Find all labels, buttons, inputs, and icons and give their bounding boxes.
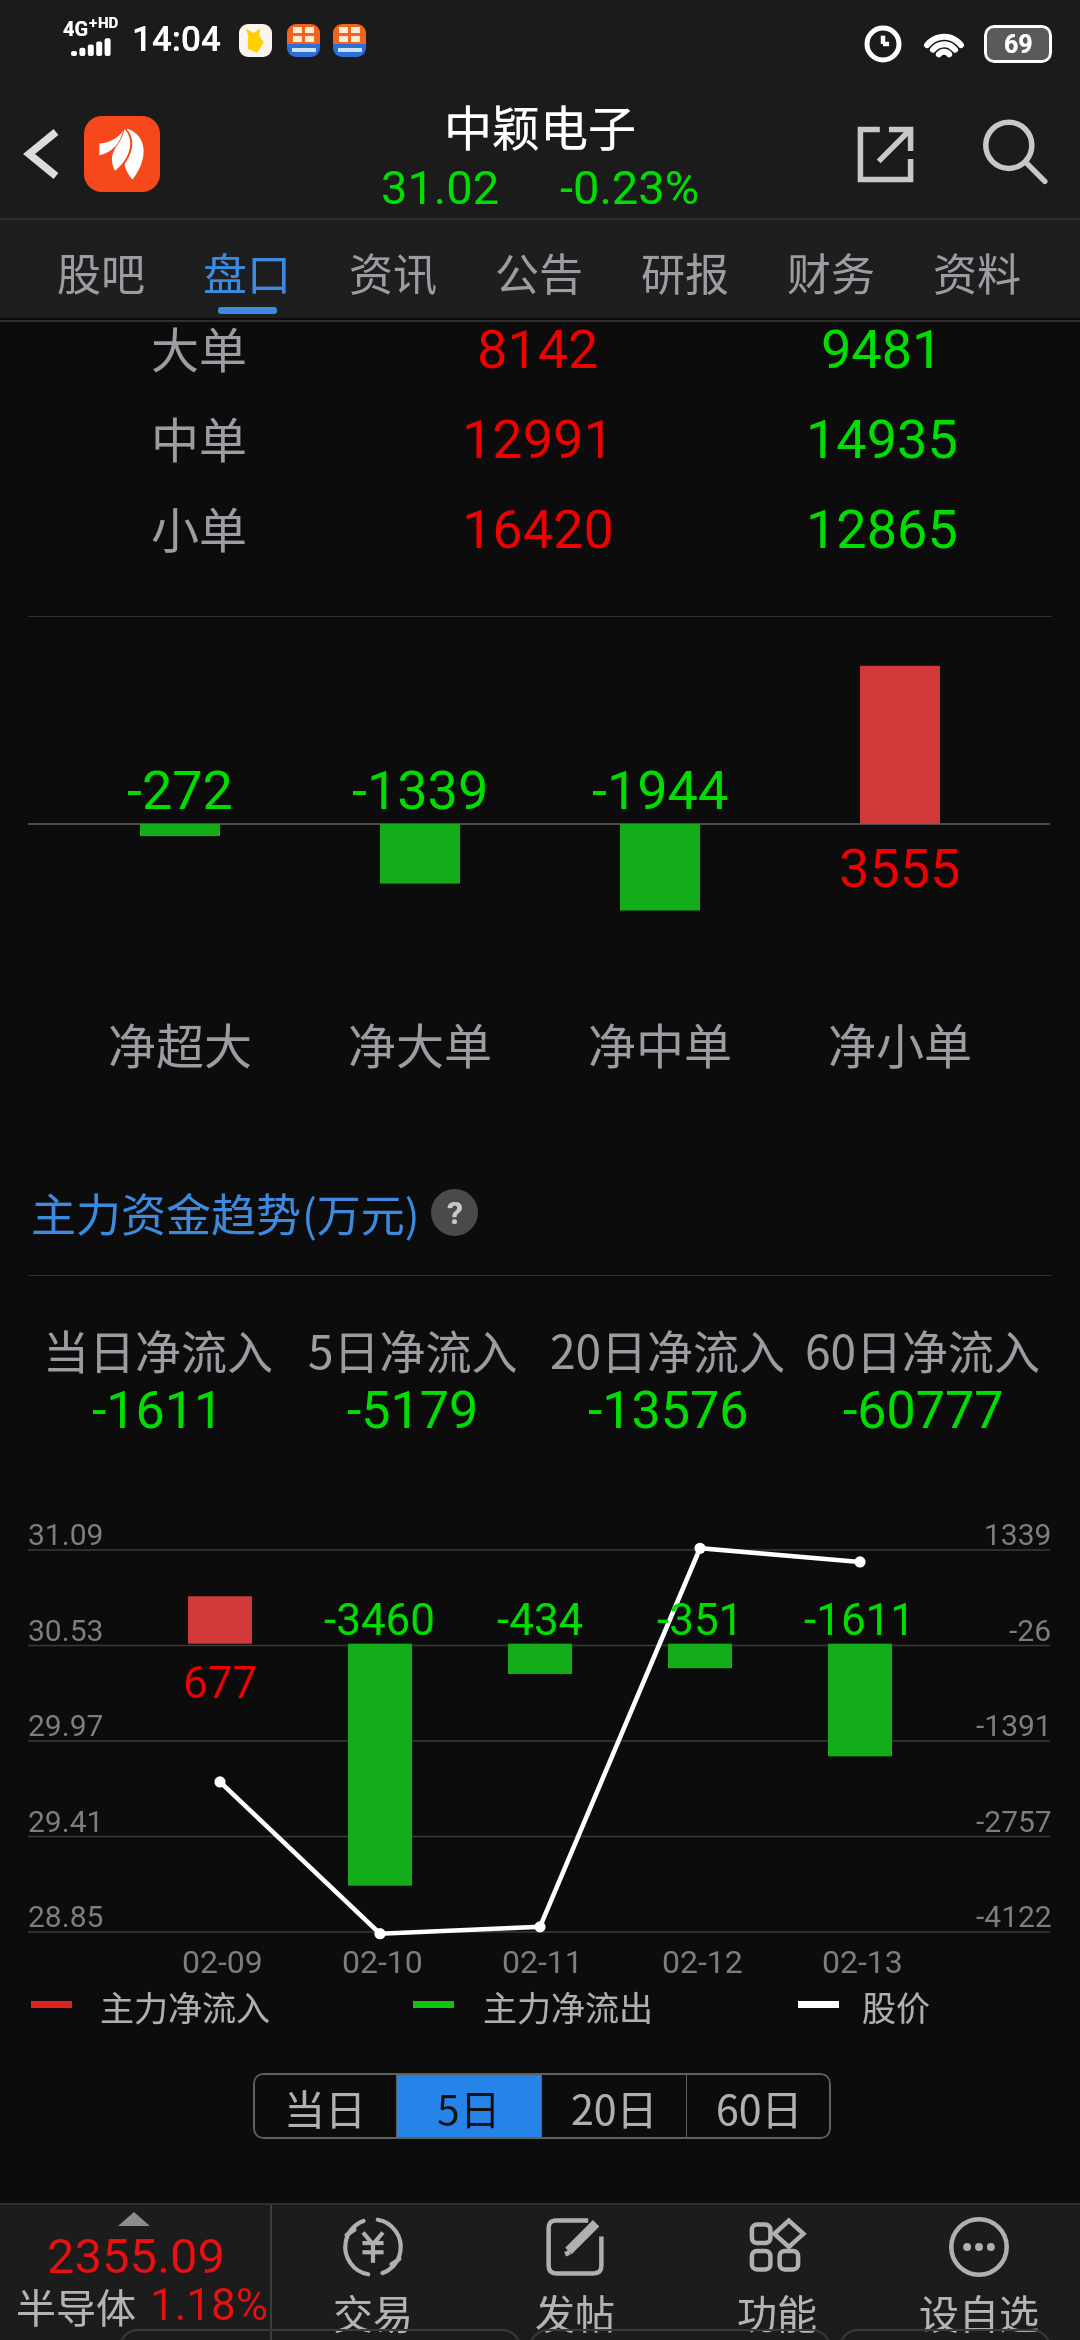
staticText: 当日净流入 xyxy=(43,1316,273,1383)
staticText: 4G xyxy=(63,17,89,40)
button[interactable]: Help xyxy=(431,1189,478,1236)
staticText: 研报 xyxy=(641,240,729,304)
staticText: 小单 xyxy=(151,492,248,562)
staticText: 20日净流入 xyxy=(550,1316,786,1383)
staticText: 12991 xyxy=(462,408,614,471)
staticText: 3555 xyxy=(839,837,961,900)
button[interactable]: 财务 xyxy=(758,220,904,318)
staticText: -1339 xyxy=(352,759,489,822)
staticText: 主力净流出 xyxy=(483,1982,653,2031)
staticText: 5日净流入 xyxy=(308,1316,518,1383)
staticText: 1339 xyxy=(984,1517,1052,1552)
button[interactable]: 资讯 xyxy=(320,220,466,318)
staticText: -3460 xyxy=(324,1594,436,1646)
staticText: -272 xyxy=(127,759,233,822)
staticText: 股价 xyxy=(862,1982,930,2031)
staticText: -434 xyxy=(497,1594,584,1646)
button[interactable]: 功能 xyxy=(676,2205,878,2340)
staticText: -13576 xyxy=(588,1380,749,1441)
button[interactable]: 20日 xyxy=(542,2073,686,2139)
staticText: (万元) xyxy=(302,1181,420,1245)
staticText: HD xyxy=(98,14,119,32)
staticText: -1391 xyxy=(976,1708,1052,1743)
button[interactable]: 当日 xyxy=(253,2073,396,2139)
staticText: 31.02 xyxy=(381,160,500,215)
staticText: -5179 xyxy=(347,1380,479,1441)
staticText: 8142 xyxy=(477,318,599,381)
staticText: 交易 xyxy=(333,2283,413,2340)
staticText: 9481 xyxy=(821,318,943,381)
staticText: -0.23% xyxy=(560,160,700,215)
staticText: 02-09 xyxy=(182,1943,263,1981)
staticText: 2355.09 xyxy=(47,2228,226,2285)
button[interactable]: 5日 xyxy=(397,2073,541,2139)
staticText: 大单 xyxy=(151,312,248,382)
button[interactable]: Back xyxy=(0,88,86,220)
staticText: 20日 xyxy=(571,2077,658,2136)
staticText: 公告 xyxy=(495,240,583,304)
staticText: 29.41 xyxy=(28,1804,104,1839)
staticText: 28.85 xyxy=(28,1899,104,1934)
button[interactable]: App home xyxy=(84,116,160,192)
staticText: 60日 xyxy=(716,2077,803,2136)
staticText: 资讯 xyxy=(349,240,437,304)
staticText: 1.18% xyxy=(150,2279,269,2331)
staticText: 02-13 xyxy=(822,1943,903,1981)
staticText: -4122 xyxy=(976,1899,1052,1934)
staticText: 中颖电子 xyxy=(444,90,637,160)
staticText: 31.09 xyxy=(28,1517,104,1552)
staticText: 净小单 xyxy=(828,1008,973,1078)
button[interactable]: 发帖 xyxy=(474,2205,676,2340)
staticText: 发帖 xyxy=(535,2283,615,2340)
staticText: 677 xyxy=(183,1657,258,1709)
button[interactable]: 交易 xyxy=(272,2205,474,2340)
staticText: -351 xyxy=(657,1594,744,1646)
button[interactable]: 研报 xyxy=(612,220,758,318)
button[interactable]: 2355.09 xyxy=(0,2205,270,2340)
staticText: 当日 xyxy=(284,2077,366,2136)
button[interactable]: 盘口 xyxy=(174,220,320,318)
staticText: 半导体 xyxy=(16,2277,136,2335)
staticText: 净大单 xyxy=(348,1008,493,1078)
staticText: 60日净流入 xyxy=(805,1316,1041,1383)
staticText: 净中单 xyxy=(588,1008,733,1078)
button[interactable]: 资料 xyxy=(904,220,1050,318)
button[interactable]: 设自选 xyxy=(878,2205,1080,2340)
staticText: 14:04 xyxy=(132,19,221,60)
staticText: 30.53 xyxy=(28,1613,104,1648)
staticText: 中单 xyxy=(151,402,248,472)
staticText: 净超大 xyxy=(108,1008,253,1078)
staticText: 16420 xyxy=(462,498,614,561)
staticText: 主力净流入 xyxy=(100,1982,270,2031)
staticText: 02-12 xyxy=(662,1943,743,1981)
staticText: 14935 xyxy=(806,408,958,471)
staticText: 盘口 xyxy=(203,240,291,304)
staticText: 12865 xyxy=(806,498,958,561)
button[interactable]: 主力资金趋势 xyxy=(31,1180,478,1245)
staticText: -1944 xyxy=(592,759,729,822)
button[interactable]: 股吧 xyxy=(28,220,174,318)
button[interactable]: Share xyxy=(818,88,952,220)
staticText: 02-11 xyxy=(502,1943,583,1981)
button[interactable]: Search xyxy=(952,88,1080,220)
button[interactable]: 60日 xyxy=(687,2073,831,2139)
staticText: -1611 xyxy=(804,1594,916,1646)
staticText: 功能 xyxy=(737,2283,817,2340)
staticText: -2757 xyxy=(976,1804,1052,1839)
staticText: -60777 xyxy=(843,1380,1004,1441)
staticText: ? xyxy=(447,1194,463,1232)
staticText: -26 xyxy=(1009,1613,1052,1648)
staticText: 财务 xyxy=(787,240,875,304)
staticText: 主力资金趋势 xyxy=(31,1180,302,1245)
button[interactable]: 公告 xyxy=(466,220,612,318)
staticText: + xyxy=(89,14,98,32)
staticText: 股吧 xyxy=(57,240,145,304)
staticText: 资料 xyxy=(933,240,1021,304)
staticText: -1611 xyxy=(92,1380,224,1441)
staticText: 02-10 xyxy=(342,1943,423,1981)
staticText: 29.97 xyxy=(28,1708,104,1743)
staticText: 设自选 xyxy=(919,2283,1039,2340)
staticText: 5日 xyxy=(437,2077,501,2136)
staticText: 69 xyxy=(1004,30,1033,59)
